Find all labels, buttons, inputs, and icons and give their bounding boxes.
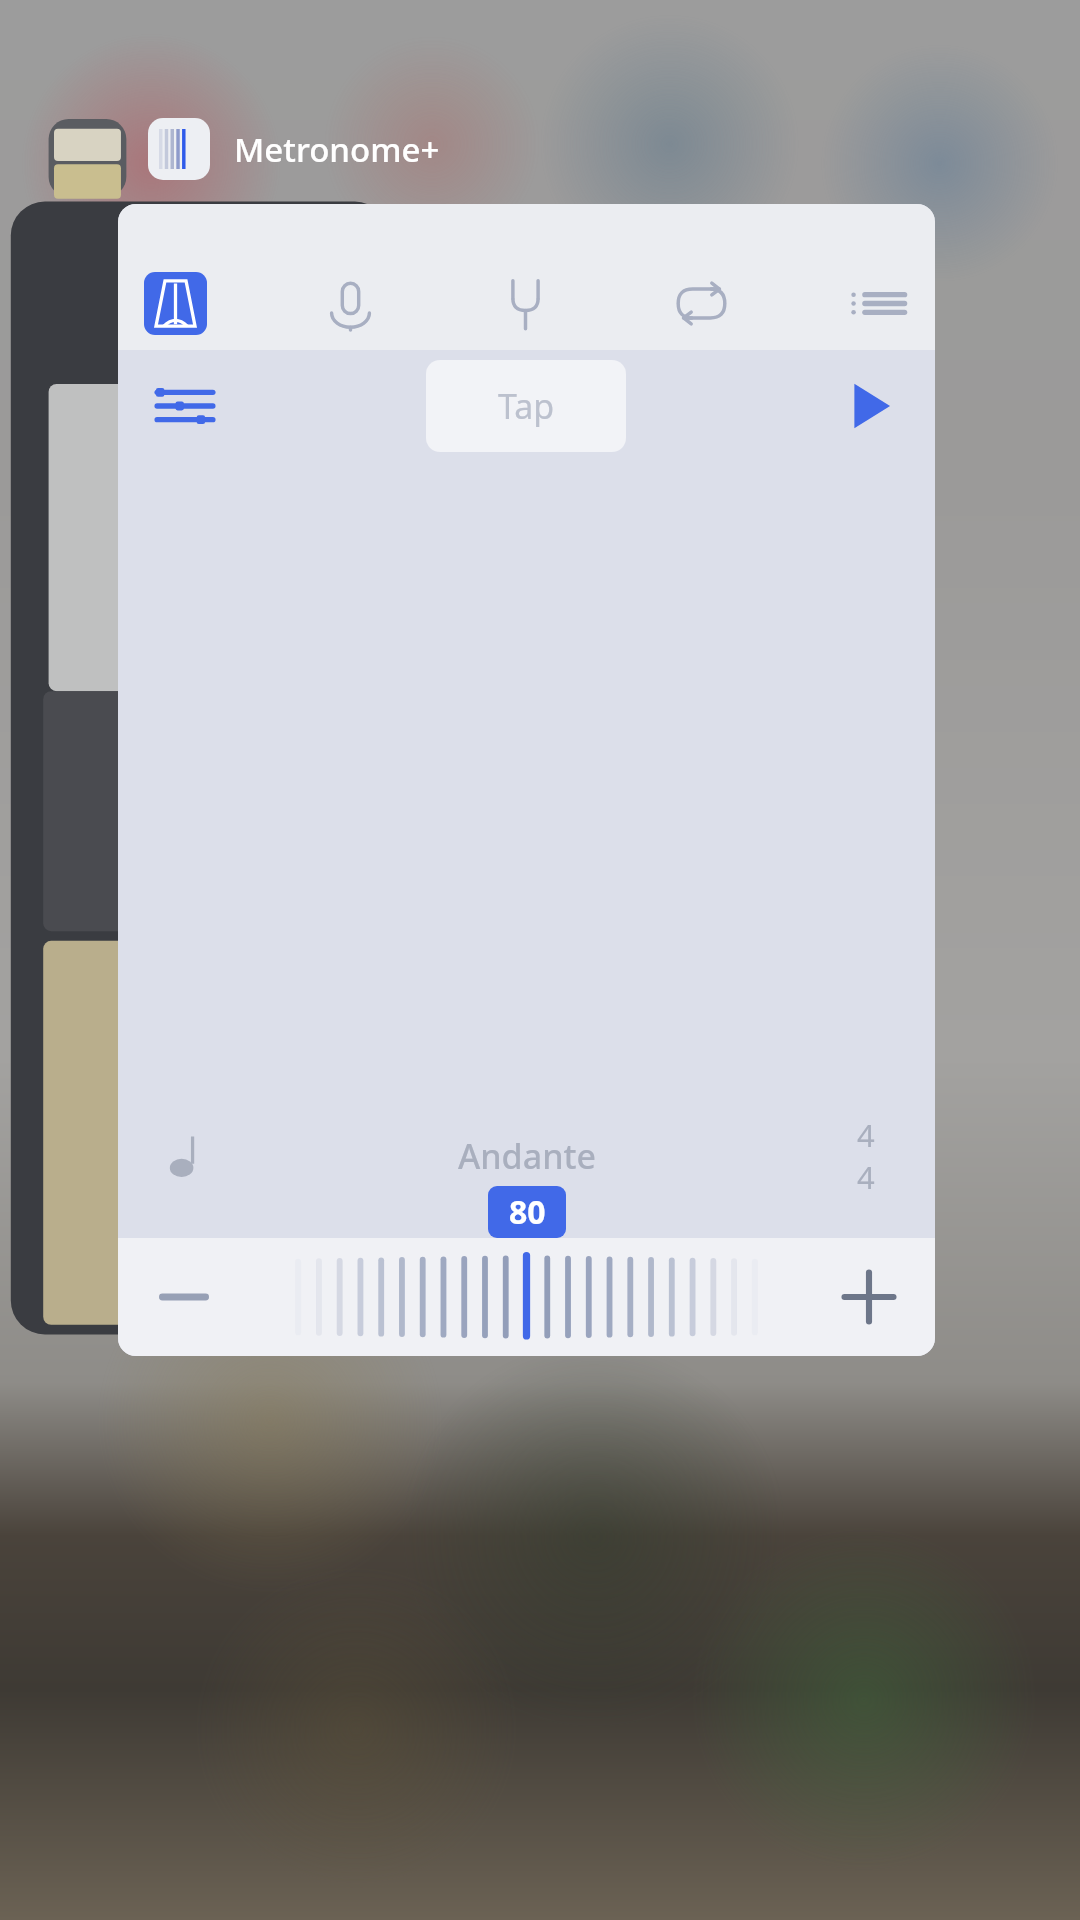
button[interactable]: Tuning fork bbox=[494, 272, 557, 335]
button[interactable]: Increase tempo bbox=[833, 1261, 905, 1333]
button[interactable]: Metronome+ app icon bbox=[148, 118, 210, 180]
staticText: Metronome+ bbox=[234, 127, 440, 172]
button[interactable]: Decrease tempo bbox=[148, 1261, 220, 1333]
button[interactable]: Loop bbox=[670, 272, 733, 335]
button[interactable]: Note value bbox=[160, 1129, 214, 1183]
staticText: 80 bbox=[509, 1190, 546, 1234]
staticText: 4 bbox=[857, 1114, 875, 1156]
button[interactable]: Setlist bbox=[846, 272, 909, 335]
button[interactable]: Settings bbox=[154, 375, 216, 437]
button[interactable]: Microphone bbox=[319, 272, 382, 335]
button[interactable]: Metronome bbox=[144, 272, 207, 335]
staticText: Andante bbox=[458, 1133, 596, 1179]
staticText: 4 bbox=[857, 1156, 875, 1198]
button[interactable]: Tap bbox=[426, 360, 626, 452]
button[interactable]: 4 bbox=[839, 1114, 893, 1198]
staticText: Tap bbox=[498, 383, 555, 429]
button[interactable]: Play bbox=[837, 375, 899, 437]
